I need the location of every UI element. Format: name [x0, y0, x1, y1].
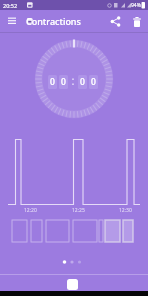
staticText: 12:20: [24, 207, 37, 214]
staticText: 0: [50, 76, 55, 88]
staticText: 0: [61, 76, 66, 88]
staticText: Contractions: [26, 15, 81, 27]
staticText: 20:52: [3, 2, 18, 9]
staticText: 0: [91, 76, 96, 88]
button[interactable]: [4, 13, 20, 29]
button[interactable]: [67, 279, 78, 290]
staticText: 12:25: [72, 207, 85, 214]
button[interactable]: [128, 13, 145, 30]
staticText: 0: [80, 76, 85, 88]
staticText: 94%: [131, 2, 141, 9]
staticText: 12:30: [119, 207, 132, 214]
button[interactable]: [107, 13, 124, 30]
